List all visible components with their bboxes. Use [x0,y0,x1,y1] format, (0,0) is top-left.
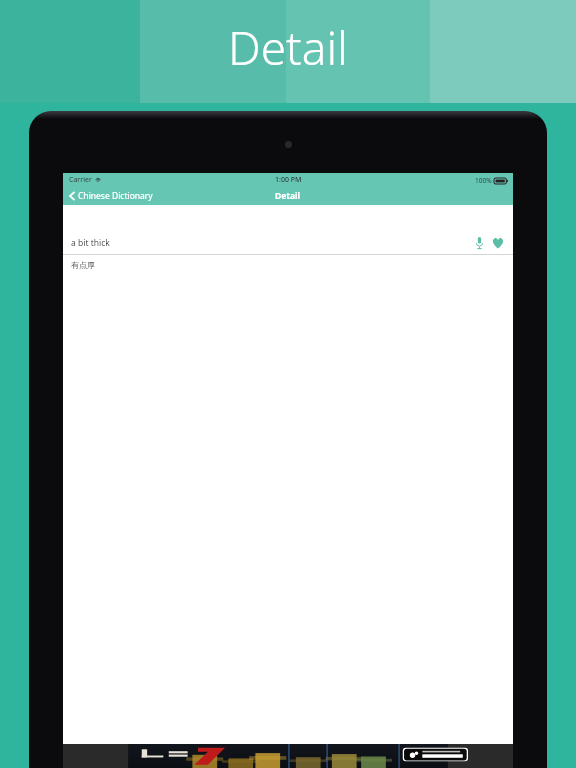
staticText: a bit thick [71,237,110,249]
button[interactable]: Advertisement [63,744,513,768]
button[interactable]: Chinese Dictionary [63,187,161,205]
staticText: 1:00 PM [275,175,302,185]
staticText: Carrier [69,175,92,185]
staticText: Detail [275,190,301,202]
button[interactable]: Favorite [490,235,506,251]
staticText: 有点厚 [71,260,95,270]
button[interactable]: Speak [471,235,487,251]
staticText: 100% [475,176,492,185]
staticText: Detail [228,16,348,79]
staticText: Chinese Dictionary [78,190,153,202]
